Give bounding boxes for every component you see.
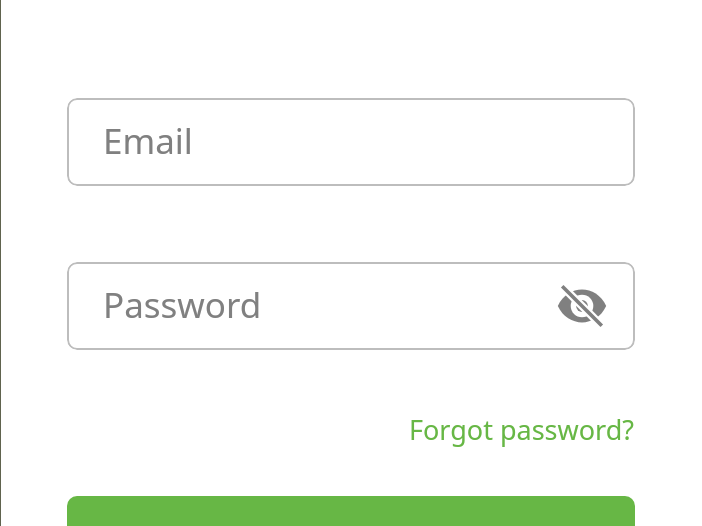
button[interactable]: Forgot password?: [409, 411, 635, 448]
staticText: Password: [103, 281, 262, 329]
button[interactable]: Email: [67, 98, 635, 186]
button[interactable]: LOG IN: [67, 496, 635, 526]
staticText: Forgot password?: [409, 411, 635, 448]
staticText: Email: [103, 117, 193, 165]
button[interactable]: Show password: [552, 276, 612, 336]
button[interactable]: Password: [67, 262, 635, 350]
